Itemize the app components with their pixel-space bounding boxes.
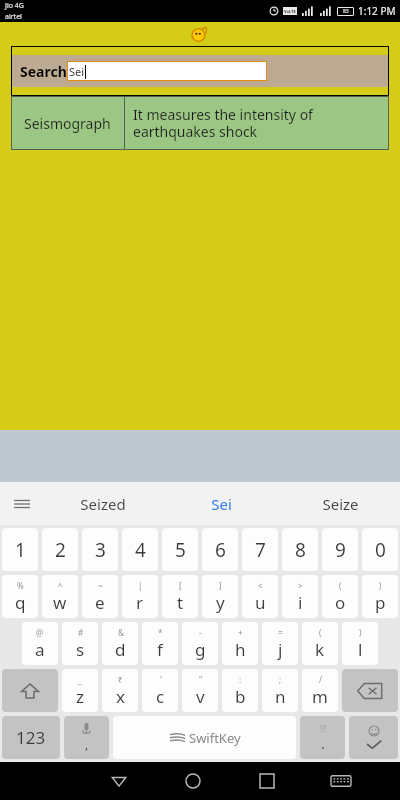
staticText: =	[278, 627, 283, 638]
staticText: )	[379, 580, 382, 591]
button[interactable]: &	[102, 622, 138, 665]
staticText: ₹	[118, 674, 123, 685]
button[interactable]: ^	[42, 575, 78, 618]
button[interactable]: Keyboard	[304, 762, 378, 800]
staticText: airtel	[5, 12, 22, 22]
button[interactable]: Menu	[0, 482, 44, 525]
staticText: *	[158, 627, 163, 638]
staticText: VoLTE	[284, 9, 296, 14]
button[interactable]: (	[322, 575, 358, 618]
button[interactable]: 7	[242, 528, 278, 571]
staticText: n	[275, 685, 286, 708]
button[interactable]: -	[182, 622, 218, 665]
staticText: ]	[219, 580, 222, 591]
button[interactable]: <	[242, 575, 278, 618]
button[interactable]: _	[62, 669, 98, 712]
button[interactable]: !?	[300, 716, 345, 759]
button[interactable]: [	[162, 575, 198, 618]
staticText: [	[179, 580, 182, 591]
button[interactable]: (	[302, 622, 338, 665]
staticText: SwiftKey	[189, 729, 241, 747]
button[interactable]: Home	[156, 762, 230, 800]
button[interactable]: ]	[202, 575, 238, 618]
staticText: %	[17, 580, 24, 591]
button[interactable]: 3	[82, 528, 118, 571]
staticText: d	[115, 638, 126, 661]
button[interactable]: 123	[2, 716, 60, 759]
staticText: ,	[85, 736, 89, 752]
button[interactable]: "	[182, 669, 218, 712]
button[interactable]: :	[222, 669, 258, 712]
button[interactable]: Shift	[2, 669, 58, 712]
button[interactable]: Voice input	[64, 716, 109, 759]
button[interactable]: *	[142, 622, 178, 665]
button[interactable]: 2	[42, 528, 78, 571]
staticText: m	[312, 685, 328, 708]
button[interactable]: @	[22, 622, 58, 665]
staticText: It measures the intensity of earthquakes…	[133, 105, 385, 141]
button[interactable]: 6	[202, 528, 238, 571]
staticText: i	[298, 591, 303, 614]
button[interactable]: Enter	[349, 716, 398, 759]
staticText: 5	[175, 537, 186, 563]
button[interactable]: >	[282, 575, 318, 618]
button[interactable]: Back	[82, 762, 156, 800]
staticText: 1:12 PM	[358, 4, 396, 18]
button[interactable]: Seize	[281, 482, 400, 525]
staticText: _	[78, 674, 82, 685]
button[interactable]: '	[142, 669, 178, 712]
staticText: b	[235, 685, 246, 708]
button[interactable]: Recents	[230, 762, 304, 800]
button[interactable]: 5	[162, 528, 198, 571]
button[interactable]: #	[62, 622, 98, 665]
button[interactable]: |	[122, 575, 158, 618]
staticText: 7	[255, 537, 266, 563]
staticText: 2	[55, 537, 66, 563]
staticText: h	[235, 638, 246, 661]
staticText: l	[358, 638, 363, 661]
staticText: @	[36, 627, 44, 638]
button[interactable]: )	[362, 575, 398, 618]
staticText: x	[116, 685, 125, 708]
staticText: 4	[135, 537, 146, 563]
staticText: +	[238, 627, 243, 638]
button[interactable]: Backspace	[342, 669, 398, 712]
button[interactable]: 0	[362, 528, 398, 571]
button[interactable]: ₹	[102, 669, 138, 712]
staticText: s	[76, 638, 85, 661]
staticText: :	[239, 674, 242, 685]
button[interactable]: %	[2, 575, 38, 618]
staticText: o	[335, 591, 346, 614]
button[interactable]: ~	[82, 575, 118, 618]
staticText: (	[339, 580, 342, 591]
button[interactable]: /	[302, 669, 338, 712]
button[interactable]: 4	[122, 528, 158, 571]
staticText: f	[157, 638, 163, 661]
button[interactable]: Seismograph	[11, 96, 389, 150]
button[interactable]: 8	[282, 528, 318, 571]
staticText: Seized	[80, 494, 126, 514]
button[interactable]: Search	[11, 55, 389, 87]
staticText: 0	[375, 537, 386, 563]
button[interactable]: Sei	[162, 482, 281, 525]
button[interactable]: )	[342, 622, 378, 665]
button[interactable]: Seized	[44, 482, 162, 525]
staticText: k	[315, 638, 325, 661]
staticText: j	[278, 638, 283, 661]
staticText: Sei	[211, 494, 232, 514]
staticText: Seismograph	[24, 114, 111, 133]
staticText: Seize	[322, 494, 359, 514]
staticText: /	[319, 674, 322, 685]
staticText: .	[321, 734, 325, 753]
staticText: 8	[295, 537, 306, 563]
button[interactable]: 9	[322, 528, 358, 571]
button[interactable]: +	[222, 622, 258, 665]
button[interactable]: 1	[2, 528, 38, 571]
staticText: Jio 4G	[5, 1, 24, 11]
staticText: u	[255, 591, 266, 614]
staticText: p	[375, 591, 386, 614]
button[interactable]: Space	[113, 716, 296, 759]
button[interactable]: ;	[262, 669, 298, 712]
staticText: 123	[16, 726, 46, 749]
button[interactable]: =	[262, 622, 298, 665]
